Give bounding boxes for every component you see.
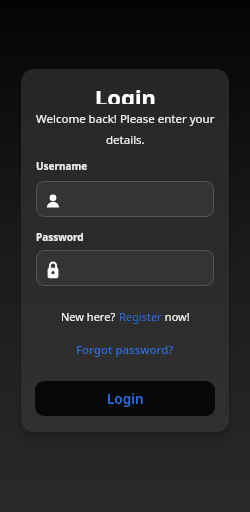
button[interactable]: Register [119, 309, 162, 324]
staticText: Welcome back! Please enter your [36, 111, 215, 127]
button[interactable] [36, 250, 214, 286]
staticText: Login [107, 390, 144, 408]
staticText: Password [36, 230, 84, 244]
button[interactable] [36, 181, 214, 217]
button[interactable]: Login [35, 381, 215, 416]
staticText: Login [95, 82, 156, 104]
staticText: Username [36, 159, 88, 173]
staticText: now! [162, 309, 190, 324]
staticText: details. [106, 132, 145, 148]
staticText: New here? [61, 309, 119, 324]
button[interactable]: Forgot password? [76, 342, 174, 358]
